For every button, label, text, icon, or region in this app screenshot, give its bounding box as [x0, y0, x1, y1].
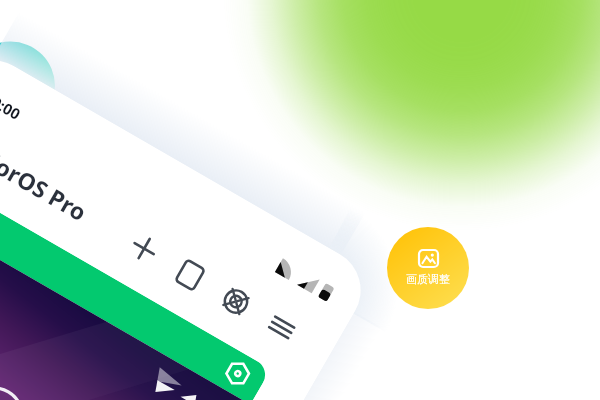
button[interactable]: Menu: [245, 291, 318, 364]
button[interactable]: Screen recorder: [154, 238, 226, 311]
staticText: 9:00: [0, 91, 24, 124]
button[interactable]: Performance: [200, 265, 272, 337]
button[interactable]: Add: [108, 212, 180, 284]
staticText: 画质调整: [406, 272, 450, 286]
button[interactable]: 画质调整: [387, 227, 469, 309]
button[interactable]: 游戏手机: [0, 170, 271, 400]
staticText: ColorOS Pro: [0, 132, 92, 227]
